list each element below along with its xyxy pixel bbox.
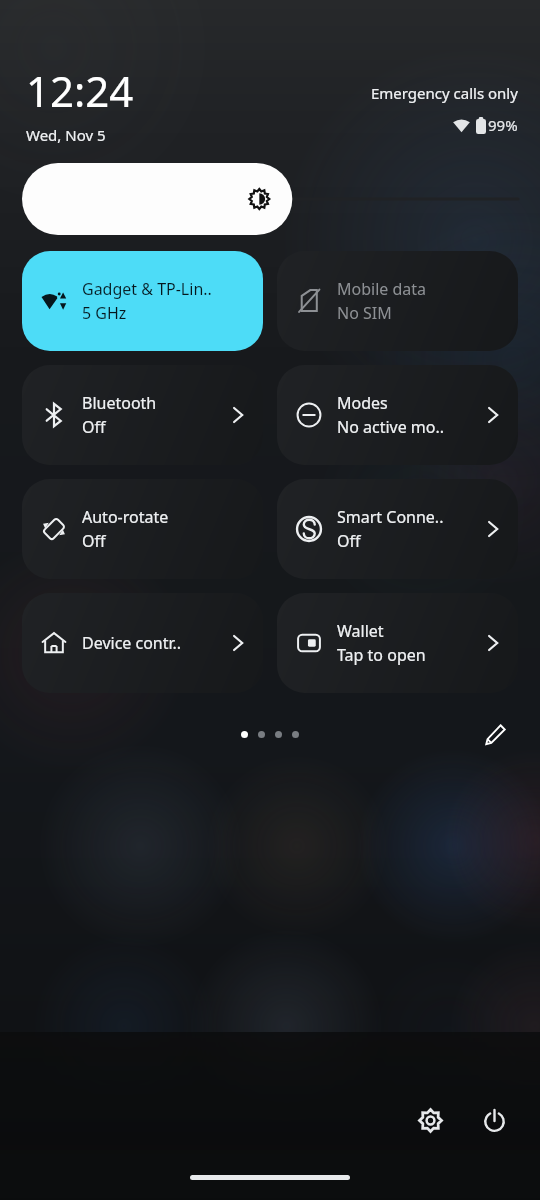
staticText: Wallet [337,620,384,642]
staticText: 12:24 [26,62,134,119]
button[interactable]: Bluetooth [22,365,263,465]
staticText: No active mo.. [337,416,445,438]
staticText: Auto-rotate [82,506,169,528]
button[interactable]: Wallet [277,593,518,693]
staticText: Tap to open [337,644,426,666]
button[interactable]: Device controls [22,593,263,693]
staticText: Mobile data [337,278,427,300]
staticText: Device contr.. [82,632,182,654]
button[interactable]: Modes [277,365,518,465]
button[interactable]: Auto-rotate [22,479,263,579]
staticText: Gadget & TP-Lin.. [82,278,212,300]
staticText: Modes [337,392,388,414]
button[interactable]: Brightness [0,163,540,235]
staticText: Emergency calls only [371,83,518,103]
button[interactable]: Edit tiles [478,717,512,751]
staticText: Bluetooth [82,392,157,414]
staticText: Off [82,530,106,552]
button[interactable]: Smart Connect [277,479,518,579]
button[interactable]: Power [470,1096,518,1144]
staticText: Off [82,416,106,438]
staticText: 5 GHz [82,302,127,324]
button[interactable]: Settings [406,1096,454,1144]
button[interactable]: Wi-Fi [22,251,263,351]
staticText: 99% [488,115,518,135]
staticText: Smart Conne.. [337,506,444,528]
staticText: Off [337,530,361,552]
button[interactable]: Mobile data [277,251,518,351]
staticText: No SIM [337,302,392,324]
staticText: Wed, Nov 5 [26,125,106,145]
